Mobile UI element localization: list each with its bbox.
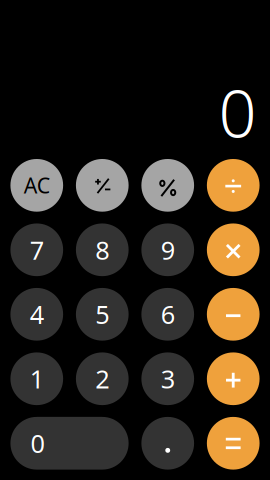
button[interactable]: 6 [141, 288, 194, 341]
button[interactable]: Divide [207, 159, 260, 212]
staticText: 7 [30, 233, 44, 267]
staticText: 3 [161, 362, 175, 395]
button[interactable]: Equals [207, 417, 260, 470]
staticText: 6 [161, 297, 175, 331]
staticText: 0 [218, 67, 256, 156]
button[interactable]: 7 [10, 223, 63, 276]
staticText: 5 [95, 297, 109, 331]
button[interactable]: 1 [10, 352, 63, 405]
staticText: 4 [30, 297, 44, 331]
staticText: 9 [161, 233, 175, 267]
button[interactable]: 8 [76, 223, 129, 276]
button[interactable]: 2 [76, 352, 129, 405]
staticText: 1 [30, 362, 44, 395]
button[interactable]: 3 [141, 352, 194, 405]
button[interactable]: AC [10, 159, 63, 212]
staticText: AC [24, 171, 50, 199]
button[interactable]: Minus [207, 288, 260, 341]
button[interactable]: 5 [76, 288, 129, 341]
button[interactable]: Decimal Point [141, 417, 194, 470]
button[interactable]: Multiply [207, 223, 260, 276]
button[interactable]: 0 [10, 417, 129, 470]
button[interactable]: 4 [10, 288, 63, 341]
button[interactable]: Plus [207, 352, 260, 405]
staticText: 8 [95, 233, 109, 267]
staticText: 0 [30, 426, 44, 460]
button[interactable]: Percent [141, 159, 194, 212]
staticText: 2 [95, 362, 109, 395]
button[interactable]: 9 [141, 223, 194, 276]
button[interactable]: Plus Minus [76, 159, 129, 212]
